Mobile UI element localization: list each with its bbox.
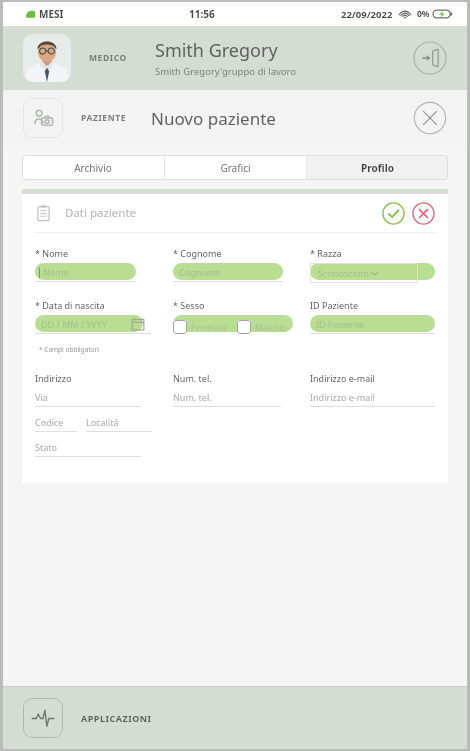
staticText: * Data di nascita	[35, 299, 105, 311]
button[interactable]: Codice	[35, 416, 77, 432]
button[interactable]: Num. tel.	[173, 391, 281, 407]
staticText: Dati paziente	[65, 205, 137, 221]
button[interactable]: Logout	[413, 41, 447, 75]
button[interactable]: PAZIENTE	[3, 90, 467, 146]
staticText: Indirizzo	[35, 372, 72, 384]
staticText: Codice	[35, 416, 64, 428]
staticText: APPLICAZIONI	[81, 712, 152, 724]
staticText: Indirizzo e-mail	[310, 391, 375, 403]
button[interactable]: Archivio	[22, 155, 164, 180]
staticText: Nome	[43, 266, 69, 278]
button[interactable]: Pick date	[131, 317, 145, 331]
staticText: 22/09/2022	[341, 8, 393, 21]
staticText: Stato	[35, 441, 57, 453]
staticText: MEDICO	[89, 52, 127, 64]
staticText: 11:56	[189, 7, 215, 21]
staticText: DD / MM / YYYY	[41, 318, 107, 330]
staticText: Grafici	[220, 161, 251, 175]
staticText: * Sesso	[173, 299, 205, 311]
staticText: * Cognome	[173, 247, 222, 259]
staticText: Nuovo paziente	[151, 107, 276, 130]
staticText: Smith Gregory	[155, 38, 278, 63]
staticText: ID Paziente	[316, 318, 364, 330]
staticText: * Razza	[310, 247, 342, 259]
staticText: Indirizzo e-mail	[310, 372, 375, 384]
button[interactable]: Femmina	[173, 320, 227, 334]
button[interactable]: Cancel	[412, 202, 435, 225]
staticText: MESI	[39, 7, 64, 21]
button[interactable]: Grafici	[165, 155, 306, 180]
staticText: PAZIENTE	[81, 112, 127, 124]
staticText: Maschio	[255, 322, 287, 333]
button[interactable]: Maschio	[237, 320, 287, 334]
button[interactable]: Indirizzo e-mail	[310, 391, 435, 407]
button[interactable]: Sconosciuto	[310, 263, 418, 283]
staticText: Archivio	[74, 161, 112, 175]
staticText: Via	[35, 391, 48, 403]
staticText: Num. tel.	[173, 372, 212, 384]
button[interactable]: Stato	[35, 441, 141, 457]
button[interactable]: Confirm	[382, 202, 405, 225]
button[interactable]: Nome	[35, 263, 136, 280]
staticText: Sconosciuto	[318, 267, 369, 279]
staticText: Num. tel.	[173, 391, 212, 403]
button[interactable]: APPLICAZIONI	[3, 687, 467, 749]
button[interactable]: DD / MM / YYYY	[35, 315, 143, 332]
staticText: ID Paziente	[310, 299, 358, 311]
button[interactable]: Cognome	[173, 263, 283, 280]
button[interactable]: Località	[86, 416, 152, 432]
staticText: Profilo	[361, 161, 394, 175]
staticText: Cognome	[179, 266, 221, 278]
staticText: * Nome	[35, 247, 69, 259]
staticText: Smith Gregory'gruppo di lavoro	[155, 65, 297, 78]
button[interactable]: ID Paziente	[310, 315, 435, 332]
staticText: Femmina	[191, 322, 227, 333]
button[interactable]: Profilo	[307, 155, 448, 180]
staticText: Località	[86, 416, 119, 428]
button[interactable]: Via	[35, 391, 141, 407]
staticText: * Campi obbligatori	[39, 345, 100, 354]
staticText: 0%	[417, 8, 430, 20]
button[interactable]: MEDICO	[3, 26, 467, 90]
button[interactable]: Close	[413, 101, 447, 135]
